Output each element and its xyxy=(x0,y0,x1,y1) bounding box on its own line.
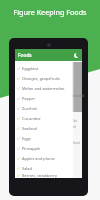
button[interactable]: Berries, strawberry xyxy=(15,173,82,178)
staticText: of xyxy=(73,125,76,129)
staticText: food xyxy=(73,141,80,145)
button[interactable]: Pineapple xyxy=(15,143,82,153)
staticText: Melon and watermelon xyxy=(22,86,65,91)
staticText: Figure Keeping Foods xyxy=(0,7,100,17)
staticText: Pineapple xyxy=(22,146,41,151)
staticText: Oranges, grapefruits xyxy=(22,76,60,81)
button[interactable]: Zucchini xyxy=(15,103,82,113)
button[interactable]: Oranges, grapefruits xyxy=(15,73,82,83)
button[interactable]: Eggs xyxy=(15,133,82,143)
staticText: Eggs xyxy=(22,136,31,141)
staticText: Eggplant xyxy=(22,66,39,71)
staticText: list xyxy=(73,119,78,123)
staticText: Zucchini xyxy=(22,106,38,111)
staticText: Cucumber xyxy=(22,116,41,121)
staticText: Salad xyxy=(22,166,32,171)
button[interactable]: Eggplant xyxy=(15,63,82,73)
button[interactable]: Night mode xyxy=(72,51,80,59)
button[interactable]: Cucumber xyxy=(15,113,82,123)
staticText: Apples and plums xyxy=(22,156,55,161)
staticText: Foods xyxy=(18,52,32,59)
staticText: Seafood xyxy=(22,126,37,131)
button[interactable]: Pepper xyxy=(15,93,82,103)
staticText: Second xyxy=(73,94,84,98)
button[interactable]: Melon and watermelon xyxy=(15,83,82,93)
button[interactable]: Salad xyxy=(15,163,82,173)
button[interactable]: Seafood xyxy=(15,123,82,133)
button[interactable]: Apples and plums xyxy=(15,153,82,163)
staticText: Pepper xyxy=(22,96,36,101)
staticText: Berries, strawberry xyxy=(22,173,57,178)
